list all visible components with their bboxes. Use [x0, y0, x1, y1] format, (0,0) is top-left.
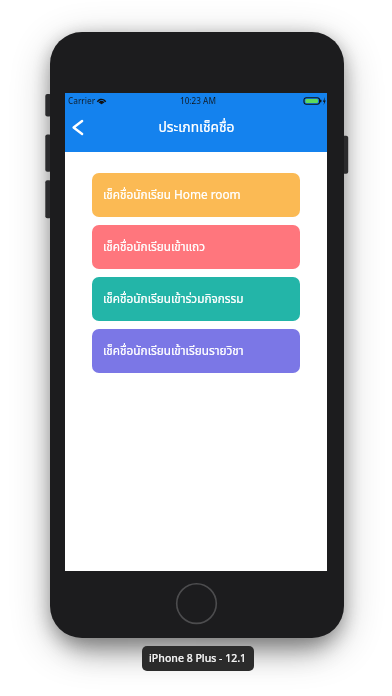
staticText: เช็คชื่อนักเรียนเข้าเรียนรายวิชา — [103, 342, 244, 360]
button[interactable]: เช็คชื่อนักเรียน Home room — [92, 173, 300, 217]
staticText: iPhone 8 Plus - 12.1 — [149, 651, 247, 667]
button[interactable]: เช็คชื่อนักเรียนเข้าร่วมกิจกรรม — [92, 277, 300, 321]
button[interactable]: Back — [65, 113, 95, 152]
staticText: เช็คชื่อนักเรียน Home room — [103, 186, 241, 204]
staticText: ประเภทเช็คชื่อ — [158, 117, 235, 138]
staticText: Carrier — [68, 95, 96, 107]
button[interactable]: เช็คชื่อนักเรียนเข้าเรียนรายวิชา — [92, 329, 300, 373]
staticText: เช็คชื่อนักเรียนเข้าแถว — [103, 238, 206, 256]
button[interactable]: เช็คชื่อนักเรียนเข้าแถว — [92, 225, 300, 269]
staticText: เช็คชื่อนักเรียนเข้าร่วมกิจกรรม — [103, 290, 244, 308]
staticText: 10:23 AM — [180, 95, 216, 107]
